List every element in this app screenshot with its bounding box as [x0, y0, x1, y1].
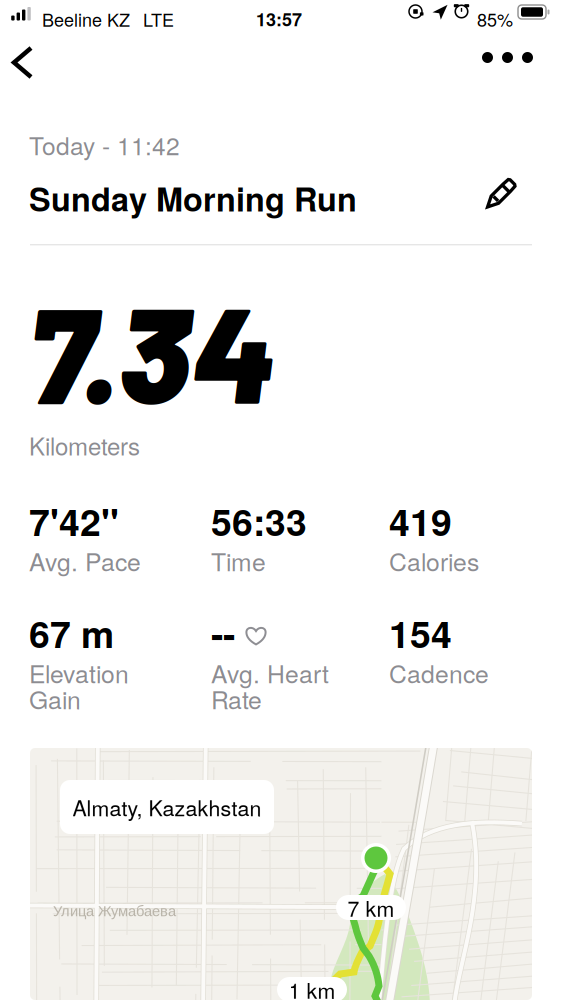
- staticText: 7 km: [347, 892, 394, 923]
- staticText: Time: [211, 543, 266, 578]
- staticText: 154: [389, 606, 452, 659]
- staticText: Avg. Heart: [211, 655, 329, 690]
- staticText: Улица Жумабаева: [53, 903, 176, 919]
- staticText: Rate: [211, 681, 262, 716]
- staticText: Elevation: [29, 655, 129, 690]
- button[interactable]: Back: [0, 35, 55, 90]
- staticText: Kilometers: [29, 428, 140, 462]
- staticText: Cadence: [389, 655, 489, 690]
- staticText: 56:33: [211, 494, 307, 547]
- staticText: 7'42'': [29, 494, 119, 547]
- staticText: LTE: [143, 6, 174, 32]
- staticText: 7.34: [28, 269, 275, 431]
- staticText: Sunday Morning Run: [29, 175, 357, 221]
- staticText: Gain: [29, 681, 81, 716]
- staticText: 67 m: [29, 606, 114, 659]
- button[interactable]: More: [462, 32, 553, 83]
- staticText: 419: [389, 494, 452, 547]
- staticText: Almaty, Kazakhstan: [72, 792, 261, 822]
- staticText: --: [211, 606, 235, 659]
- staticText: Avg. Pace: [29, 543, 141, 578]
- button[interactable]: Edit: [475, 170, 525, 219]
- staticText: Calories: [389, 543, 479, 578]
- staticText: 13:57: [256, 6, 302, 32]
- staticText: 85%: [477, 6, 513, 32]
- staticText: 1 km: [288, 974, 335, 1000]
- staticText: Beeline KZ: [42, 6, 130, 32]
- staticText: Today - 11:42: [29, 127, 180, 162]
